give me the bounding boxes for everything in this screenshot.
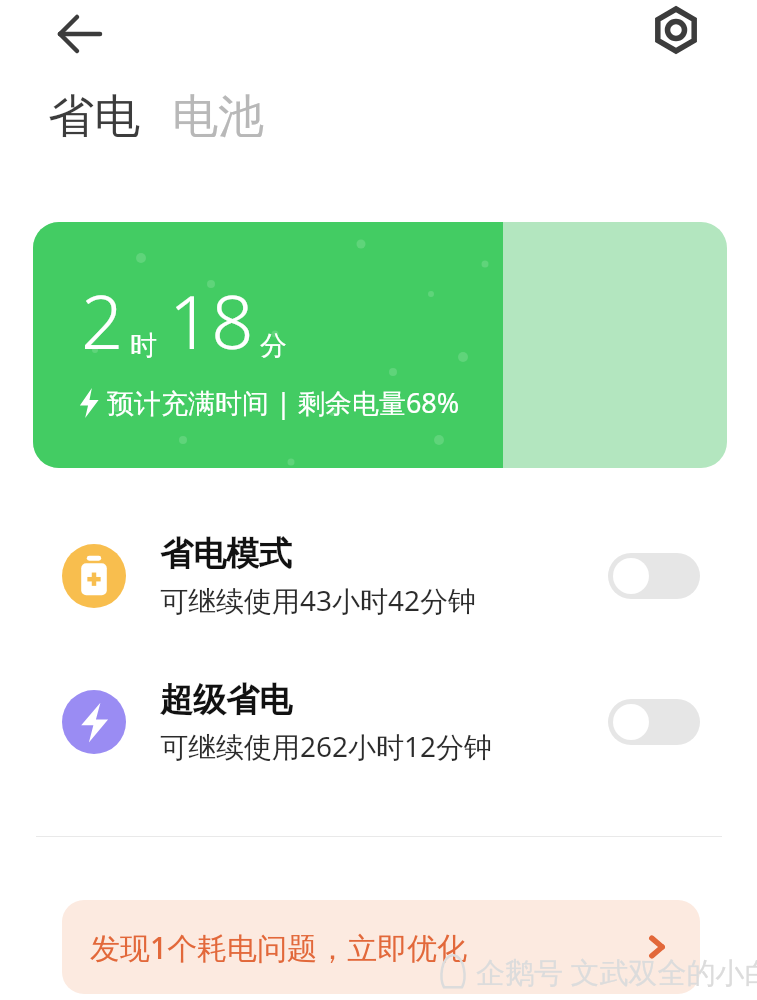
button[interactable]: 电池 [172, 88, 264, 146]
staticText: 电池 [172, 88, 264, 146]
staticText: 可继续使用43小时42分钟 [160, 581, 477, 619]
button[interactable]: Settings [646, 0, 706, 60]
button[interactable]: 省电模式 toggle [608, 553, 700, 599]
staticText: 超级省电 [160, 679, 292, 721]
button[interactable]: 超级省电 toggle [608, 699, 700, 745]
staticText: 预计充满时间 | 剩余电量68% [107, 384, 460, 421]
button[interactable]: Back [52, 4, 112, 64]
staticText: 省电模式 [160, 533, 292, 575]
staticText: 企鹅号 文武双全的小白 [476, 952, 757, 992]
button[interactable]: 省电模式 [0, 522, 757, 630]
button[interactable]: 2 [33, 222, 727, 468]
staticText: 发现1个耗电问题，立即优化 [90, 927, 468, 968]
staticText: 可继续使用262小时12分钟 [160, 727, 493, 765]
staticText: 分 [260, 329, 287, 363]
staticText: 省电 [48, 88, 140, 146]
button[interactable]: 省电 [48, 88, 140, 146]
button[interactable]: 超级省电 [0, 668, 757, 776]
button[interactable]: 发现1个耗电问题，立即优化 [62, 900, 700, 994]
staticText: 18 [169, 270, 254, 371]
staticText: 时 [130, 329, 157, 363]
staticText: 2 [81, 270, 124, 371]
